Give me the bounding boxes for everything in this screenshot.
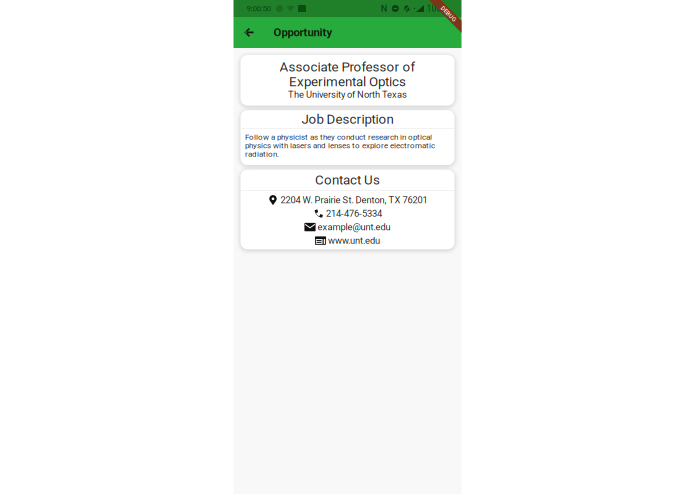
staticText: 9:00:50 <box>246 4 270 13</box>
button[interactable]: Address <box>240 193 454 207</box>
staticText: 2204 W. Prairie St. Denton, TX 76201 <box>281 195 428 205</box>
staticText: Experimental Optics <box>289 74 406 89</box>
staticText: www.unt.edu <box>328 235 380 246</box>
staticText: Opportunity <box>273 26 332 39</box>
button[interactable]: Website <box>240 234 454 247</box>
button[interactable]: Phone <box>240 207 454 220</box>
staticText: DEBUG <box>439 10 458 17</box>
staticText: Associate Professor of <box>279 59 415 75</box>
button[interactable]: Back <box>236 17 261 48</box>
staticText: example@unt.edu <box>318 222 391 232</box>
staticText: Follow a physicist as they conduct resea… <box>245 132 435 159</box>
staticText: 214-476-5334 <box>326 208 382 219</box>
staticText: The University of North Texas <box>288 89 407 100</box>
staticText: 100 <box>426 3 441 14</box>
staticText: N <box>381 3 388 14</box>
staticText: Job Description <box>301 111 393 127</box>
button[interactable]: Email <box>240 220 454 234</box>
staticText: Contact Us <box>315 172 380 188</box>
